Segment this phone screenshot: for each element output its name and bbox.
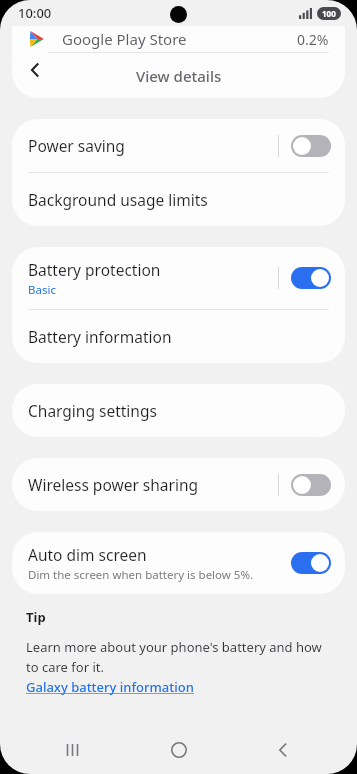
button[interactable]: On [291,267,331,289]
staticText: Battery protection [28,259,161,280]
staticText: 100 [322,8,336,19]
staticText: Dim the screen when battery is below 5%. [28,567,254,583]
staticText: Power saving [28,135,125,156]
button[interactable]: Auto dim screen [12,532,345,594]
staticText: View details [136,66,222,86]
button[interactable]: Google Play Store [12,26,345,52]
staticText: Charging settings [28,400,157,421]
staticText: Tip [26,608,46,626]
button[interactable]: Charging settings [12,384,345,437]
button[interactable]: Back [13,48,57,92]
staticText: Auto dim screen [28,544,147,565]
button[interactable]: View details [12,53,345,98]
button[interactable]: Back [252,728,314,772]
staticText: Galaxy battery information [26,678,194,696]
staticText: Battery information [28,326,172,347]
button[interactable]: Home [148,728,210,772]
staticText: Wireless power sharing [28,474,199,495]
button[interactable]: Off [291,135,331,157]
button[interactable]: Background usage limits [12,173,345,226]
button[interactable]: Wireless power sharing [12,458,345,511]
button[interactable]: Battery protection [12,247,345,309]
staticText: 0.2% [297,30,329,49]
button[interactable]: Galaxy battery information [26,678,194,696]
staticText: 10:00 [18,4,52,22]
button[interactable]: Power saving [12,119,345,172]
button[interactable]: Battery information [12,310,345,363]
staticText: Google Play Store [62,29,187,49]
button[interactable]: On [291,552,331,574]
staticText: Basic [28,282,56,298]
staticText: Background usage limits [28,189,208,210]
button[interactable]: Recents [43,728,105,772]
staticText: Learn more about your phone's battery an… [26,638,331,676]
button[interactable]: Off [291,474,331,496]
